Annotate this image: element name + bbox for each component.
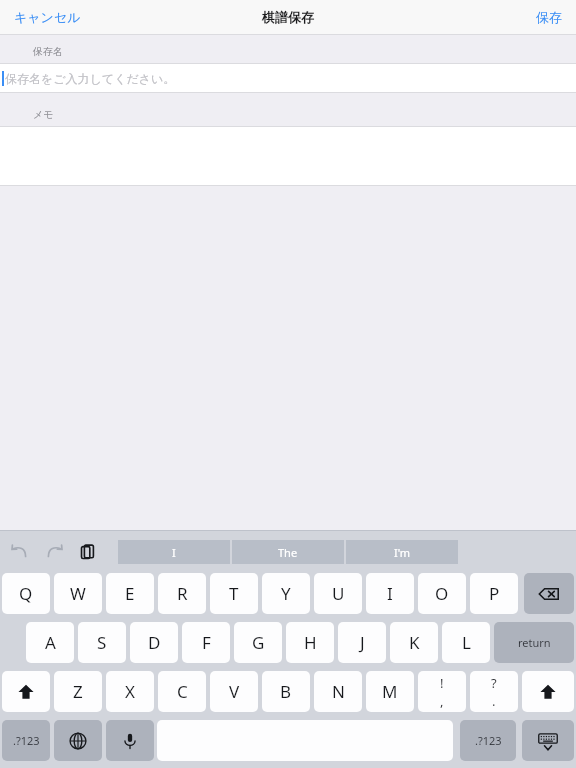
staticText: E: [125, 582, 135, 605]
staticText: S: [97, 631, 107, 654]
staticText: K: [409, 631, 420, 654]
button[interactable]: Undo: [4, 536, 36, 568]
staticText: B: [280, 680, 292, 703]
staticText: V: [229, 680, 240, 703]
button[interactable]: Hide keyboard: [522, 720, 574, 761]
button[interactable]: U: [314, 573, 362, 614]
staticText: return: [518, 635, 551, 650]
button[interactable]: Paste: [72, 536, 104, 568]
button[interactable]: Shift: [522, 671, 574, 712]
staticText: 棋譜保存: [262, 9, 314, 25]
button[interactable]: T: [210, 573, 258, 614]
staticText: O: [435, 582, 449, 605]
button[interactable]: K: [390, 622, 438, 663]
staticText: メモ: [33, 108, 54, 121]
staticText: .?123: [475, 733, 502, 748]
staticText: Y: [281, 582, 291, 605]
button[interactable]: O: [418, 573, 466, 614]
button[interactable]: ?: [470, 671, 518, 712]
button[interactable]: Redo: [38, 536, 70, 568]
button[interactable]: .?123: [2, 720, 50, 761]
staticText: X: [125, 680, 135, 703]
staticText: .?123: [13, 733, 40, 748]
staticText: F: [202, 631, 211, 654]
staticText: Z: [73, 680, 83, 703]
staticText: W: [70, 582, 86, 605]
staticText: A: [45, 631, 56, 654]
staticText: ?: [491, 674, 497, 692]
staticText: M: [382, 680, 398, 703]
button[interactable]: I: [366, 573, 414, 614]
button[interactable]: M: [366, 671, 414, 712]
button[interactable]: F: [182, 622, 230, 663]
button[interactable]: Y: [262, 573, 310, 614]
button[interactable]: 保存: [528, 4, 570, 30]
staticText: L: [462, 631, 471, 654]
button[interactable]: Shift: [2, 671, 50, 712]
button[interactable]: キャンセル: [6, 4, 89, 30]
staticText: 保存名をご入力してください。: [5, 71, 176, 86]
button[interactable]: Backspace: [524, 573, 574, 614]
button[interactable]: Dictation: [106, 720, 154, 761]
button[interactable]: G: [234, 622, 282, 663]
button[interactable]: L: [442, 622, 490, 663]
button[interactable]: E: [106, 573, 154, 614]
button[interactable]: return: [494, 622, 574, 663]
button[interactable]: R: [158, 573, 206, 614]
button[interactable]: !: [418, 671, 466, 712]
staticText: キャンセル: [14, 9, 81, 25]
staticText: Q: [19, 582, 33, 605]
button[interactable]: 保存名をご入力してください。: [0, 64, 576, 92]
button[interactable]: Q: [2, 573, 50, 614]
button[interactable]: P: [470, 573, 518, 614]
staticText: H: [304, 631, 317, 654]
staticText: R: [177, 582, 188, 605]
button[interactable]: J: [338, 622, 386, 663]
staticText: ,: [440, 692, 444, 710]
button[interactable]: Z: [54, 671, 102, 712]
staticText: T: [229, 582, 239, 605]
staticText: G: [252, 631, 265, 654]
staticText: !: [440, 674, 444, 692]
button[interactable]: Next keyboard: [54, 720, 102, 761]
button[interactable]: I'm: [346, 540, 458, 564]
button[interactable]: H: [286, 622, 334, 663]
button[interactable]: N: [314, 671, 362, 712]
button[interactable]: W: [54, 573, 102, 614]
staticText: I: [387, 582, 393, 605]
staticText: J: [360, 631, 365, 654]
button[interactable]: C: [158, 671, 206, 712]
staticText: N: [332, 680, 345, 703]
button[interactable]: V: [210, 671, 258, 712]
staticText: C: [177, 680, 188, 703]
staticText: 保存: [536, 9, 562, 25]
staticText: P: [489, 582, 500, 605]
button[interactable]: A: [26, 622, 74, 663]
staticText: The: [278, 545, 298, 560]
staticText: I: [172, 545, 176, 560]
staticText: 保存名: [33, 45, 63, 58]
staticText: U: [332, 582, 345, 605]
staticText: I'm: [394, 545, 411, 560]
staticText: .: [492, 692, 496, 710]
button[interactable]: D: [130, 622, 178, 663]
button[interactable]: The: [232, 540, 344, 564]
button[interactable]: X: [106, 671, 154, 712]
button[interactable]: .?123: [460, 720, 516, 761]
button[interactable]: S: [78, 622, 126, 663]
button[interactable]: I: [118, 540, 230, 564]
button[interactable]: B: [262, 671, 310, 712]
staticText: D: [148, 631, 161, 654]
